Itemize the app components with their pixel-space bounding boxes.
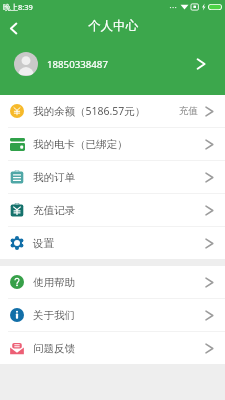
- button[interactable]: 我的余额（5186.57元）: [0, 95, 225, 127]
- staticText: 个人中心: [88, 18, 138, 34]
- staticText: 使用帮助: [33, 276, 75, 289]
- button[interactable]: 我的订单: [0, 161, 225, 193]
- button[interactable]: Back: [1, 16, 25, 40]
- button[interactable]: 关于我们: [0, 299, 225, 331]
- button[interactable]: 设置: [0, 227, 225, 259]
- staticText: 18850338487: [47, 58, 108, 71]
- staticText: 关于我们: [33, 309, 75, 322]
- button[interactable]: 18850338487: [0, 42, 225, 86]
- staticText: 晚上8:39: [3, 2, 33, 12]
- staticText: 我的余额（5186.57元）: [33, 104, 146, 118]
- button[interactable]: 我的电卡（已绑定）: [0, 128, 225, 160]
- staticText: 充值记录: [33, 204, 75, 217]
- staticText: 我的订单: [33, 171, 75, 184]
- button[interactable]: 使用帮助: [0, 266, 225, 298]
- staticText: 我的电卡（已绑定）: [33, 138, 128, 151]
- staticText: 充值: [179, 105, 198, 117]
- staticText: 问题反馈: [33, 342, 75, 355]
- staticText: 设置: [33, 237, 54, 250]
- button[interactable]: 充值记录: [0, 194, 225, 226]
- button[interactable]: 问题反馈: [0, 332, 225, 364]
